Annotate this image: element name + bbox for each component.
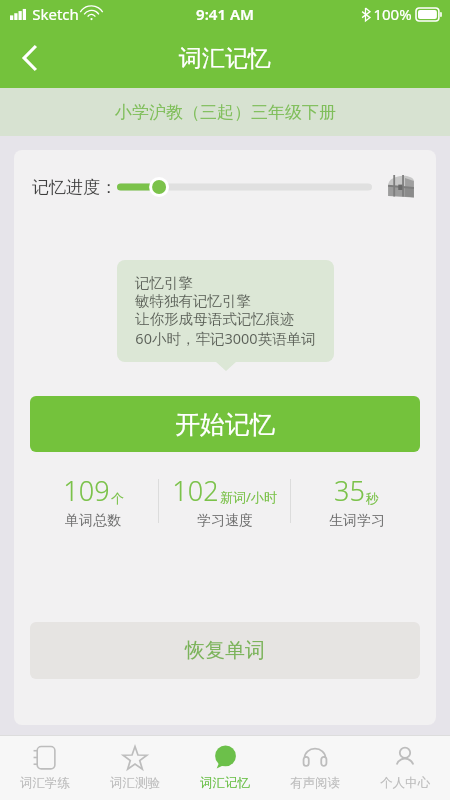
staticText: 记忆进度： — [32, 177, 117, 198]
staticText: 生词学习 — [329, 512, 385, 530]
staticText: 100% — [373, 4, 412, 24]
button[interactable]: 个人中心 — [360, 736, 450, 800]
staticText: 词汇记忆 — [200, 775, 250, 791]
button[interactable]: 词汇学练 — [0, 736, 90, 800]
staticText: 35 — [334, 472, 365, 509]
staticText: 有声阅读 — [290, 775, 340, 791]
button[interactable]: 有声阅读 — [270, 736, 360, 800]
button[interactable]: 词汇测验 — [90, 736, 180, 800]
staticText: 小学沪教（三起）三年级下册 — [115, 102, 336, 123]
staticText: 个人中心 — [380, 775, 430, 791]
staticText: 60小时，牢记3000英语单词 — [135, 328, 316, 348]
staticText: 开始记忆 — [175, 409, 275, 440]
staticText: 词汇记忆 — [179, 44, 271, 73]
staticText: 新词/小时 — [220, 488, 277, 506]
staticText: 让你形成母语式记忆痕迹 — [135, 310, 295, 328]
staticText: 102 — [172, 472, 219, 509]
staticText: 敏特独有记忆引擎 — [135, 292, 251, 310]
staticText: 秒 — [366, 490, 379, 506]
staticText: Sketch — [32, 4, 79, 24]
staticText: 9:41 AM — [196, 4, 254, 24]
staticText: 单词总数 — [65, 512, 121, 530]
button[interactable]: 词汇记忆 — [180, 736, 270, 800]
staticText: 词汇学练 — [20, 775, 70, 791]
staticText: 109 — [63, 472, 110, 509]
staticText: 记忆引擎 — [135, 274, 193, 292]
staticText: 词汇测验 — [110, 775, 160, 791]
button[interactable]: Back — [6, 34, 54, 82]
staticText: 个 — [111, 490, 124, 506]
button[interactable]: 恢复单词 — [30, 622, 420, 679]
staticText: 恢复单词 — [185, 638, 265, 663]
button[interactable]: 开始记忆 — [30, 396, 420, 452]
staticText: 学习速度 — [197, 512, 253, 530]
